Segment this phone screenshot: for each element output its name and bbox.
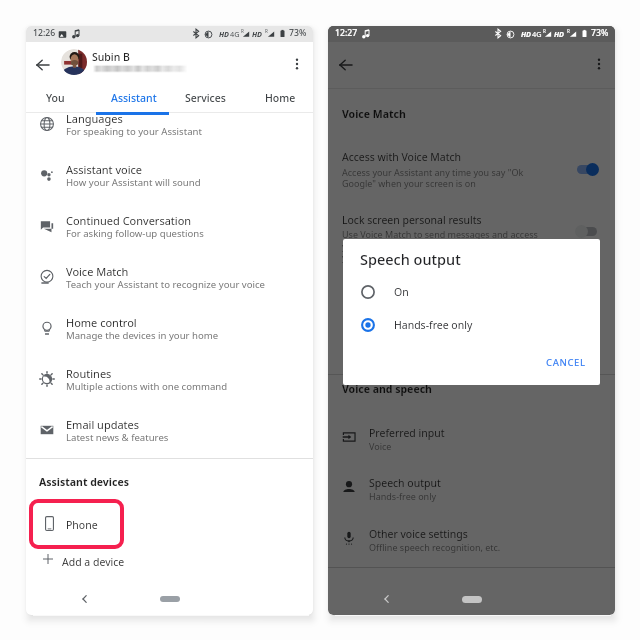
staticText: 12:26 (33, 27, 56, 39)
button[interactable]: Assistant voice (26, 161, 313, 212)
button[interactable]: Languages (26, 110, 313, 161)
staticText: Voice (369, 440, 392, 452)
staticText: your calendar, contacts and more, even w… (342, 240, 533, 252)
staticText: Preferred input (369, 426, 445, 440)
button[interactable]: Profile photo (61, 49, 87, 75)
button[interactable]: More options (586, 51, 612, 77)
button[interactable]: Hands-free only (343, 308, 600, 341)
staticText: Speech output (369, 476, 441, 490)
staticText: Access with Voice Match (342, 150, 462, 164)
staticText: R (567, 28, 570, 34)
staticText: Teach your Assistant to recognize your v… (66, 278, 266, 291)
button[interactable]: Home (160, 596, 180, 602)
staticText: Email updates (66, 417, 140, 432)
button[interactable]: You (26, 83, 92, 113)
staticText: Hands-free only (369, 490, 437, 502)
staticText: For speaking to your Assistant (66, 125, 202, 138)
staticText: 4G (532, 29, 542, 39)
button[interactable]: Preferred input (328, 423, 615, 474)
staticText: Voice Match (66, 264, 129, 279)
staticText: Assistant voice (66, 162, 143, 177)
button[interactable]: Email updates (26, 416, 313, 467)
staticText: HD (252, 29, 263, 39)
staticText: For asking follow-up questions (66, 227, 204, 240)
staticText: Phone (66, 518, 98, 532)
staticText: Home (265, 91, 296, 105)
button[interactable]: On (343, 275, 600, 308)
staticText: Offline speech recognition, etc. (369, 541, 501, 553)
staticText: Languages (66, 111, 123, 126)
staticText: Services (185, 91, 226, 105)
button[interactable]: More options (284, 51, 310, 77)
button[interactable]: Assistant (97, 83, 170, 113)
button[interactable]: Back (27, 49, 59, 81)
staticText: Other voice settings (369, 527, 468, 541)
staticText: Voice Match (342, 107, 406, 121)
button[interactable]: Voice Match (26, 263, 313, 314)
staticText: R (543, 28, 546, 34)
button[interactable]: Home (244, 83, 313, 113)
staticText: Google" when your screen is on (342, 177, 476, 189)
staticText: Continued Conversation (66, 213, 192, 228)
button[interactable]: Back (376, 588, 398, 610)
staticText: On (394, 285, 409, 299)
staticText: Assistant devices (39, 475, 129, 489)
staticText: Assistant (111, 91, 157, 105)
staticText: R (265, 28, 268, 34)
staticText: 12:27 (335, 27, 358, 39)
staticText: How your Assistant will sound (66, 176, 201, 189)
button[interactable]: Add a device (26, 548, 313, 574)
staticText: Hands-free only (394, 318, 473, 332)
staticText: Access your Assistant any time you say "… (342, 166, 524, 178)
staticText: Multiple actions with one command (66, 380, 228, 393)
button[interactable]: Back (74, 588, 96, 610)
staticText: Speech output (360, 249, 461, 269)
staticText: R (241, 28, 244, 34)
staticText: 73% (289, 27, 307, 39)
staticText: 4G (230, 29, 240, 39)
button[interactable]: Routines (26, 365, 313, 416)
staticText: CANCEL (546, 356, 586, 369)
staticText: HD (554, 29, 565, 39)
button[interactable]: Phone (29, 499, 124, 549)
button[interactable]: Continued Conversation (26, 212, 313, 263)
staticText: your phone is locked (342, 251, 430, 263)
button[interactable]: CANCEL (535, 349, 597, 376)
button[interactable]: Speech output (328, 473, 615, 524)
staticText: 73% (591, 27, 609, 39)
button[interactable]: Home control (26, 314, 313, 365)
staticText: Subin B (92, 50, 130, 64)
staticText: HD (521, 29, 532, 39)
staticText: HD (219, 29, 230, 39)
button[interactable]: Other voice settings (328, 524, 615, 575)
staticText: Routines (66, 366, 112, 381)
staticText: Lock screen personal results (342, 213, 482, 227)
staticText: You (46, 91, 65, 105)
staticText: Use Voice Match to send messages and acc… (342, 228, 538, 240)
staticText: Manage the devices in your home (66, 329, 219, 342)
button[interactable]: Services (169, 83, 242, 113)
staticText: Add a device (62, 555, 125, 569)
staticText: Voice and speech (342, 382, 432, 396)
button[interactable]: Back (330, 49, 362, 81)
button[interactable]: Home (462, 596, 482, 603)
staticText: Latest news & features (66, 431, 169, 444)
staticText: Home control (66, 315, 137, 330)
